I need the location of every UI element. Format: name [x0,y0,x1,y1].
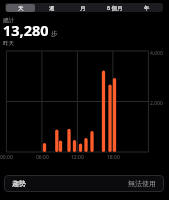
staticText: 天 [18,5,24,12]
button[interactable]: 月 [68,4,98,12]
button[interactable]: 無法使用 [120,175,164,192]
staticText: 18:00 [107,154,120,161]
staticText: 6 個月 [107,4,123,12]
staticText: 總計 [3,17,14,24]
staticText: 步 [51,30,58,38]
button[interactable]: 6 個月 [100,4,130,12]
staticText: 月 [80,5,86,12]
staticText: 13,280 [3,20,49,40]
staticText: 4,000 [150,50,163,57]
staticText: 年 [144,5,150,12]
staticText: 2,000 [150,100,163,107]
staticText: 趨勢 [12,179,26,188]
staticText: 06:00 [36,154,49,161]
button[interactable]: 天 [6,4,35,12]
staticText: 昨天 [3,40,14,47]
button[interactable]: 年 [132,4,162,12]
staticText: 00:00 [0,154,13,161]
staticText: 無法使用 [128,179,156,188]
button[interactable]: 趨勢 [4,175,34,192]
button[interactable]: 週 [37,4,66,12]
staticText: 12:00 [71,154,84,161]
staticText: 週 [49,5,55,12]
